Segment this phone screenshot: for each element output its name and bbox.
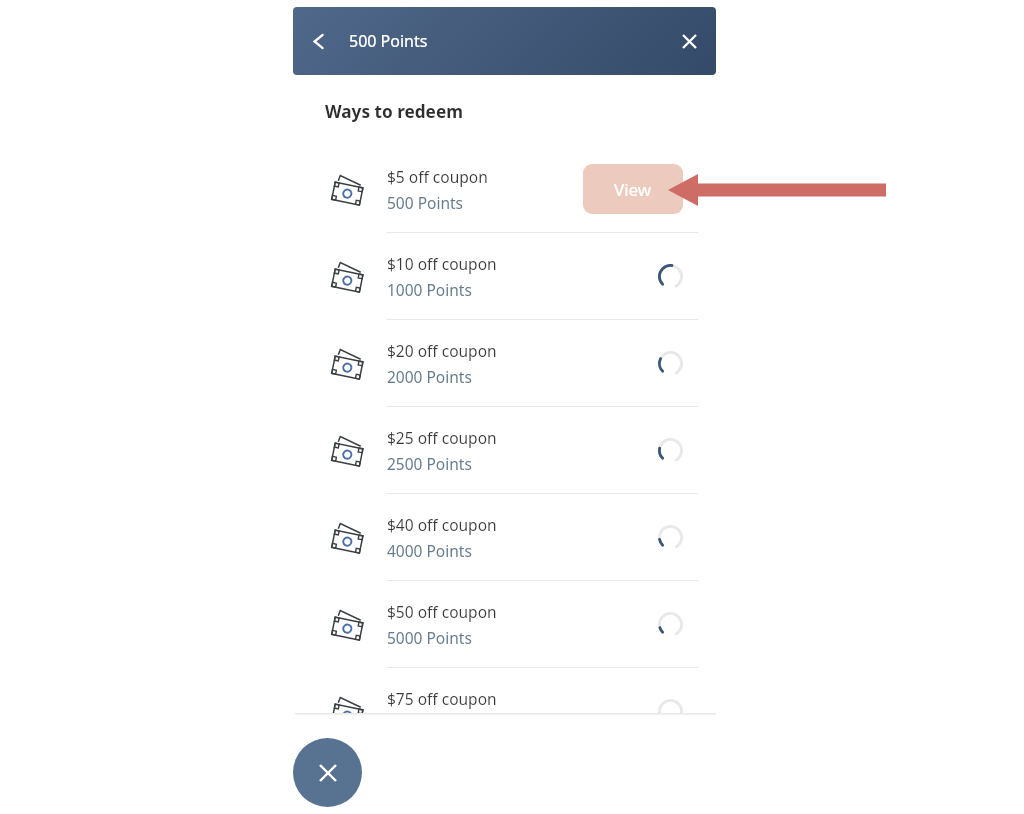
staticText: 2500 Points — [387, 453, 472, 474]
staticText: 4000 Points — [387, 540, 472, 561]
staticText: $50 off coupon — [387, 601, 497, 622]
staticText: $75 off coupon — [387, 688, 497, 709]
staticText: Ways to redeem — [325, 100, 463, 123]
button[interactable]: Close — [293, 738, 362, 807]
staticText: $20 off coupon — [387, 340, 497, 361]
staticText: 500 Points — [349, 30, 428, 52]
staticText: 5000 Points — [387, 627, 472, 648]
button[interactable]: View — [583, 164, 683, 214]
button[interactable]: $5 off coupon — [293, 146, 716, 232]
staticText: 500 Points — [387, 192, 463, 213]
staticText: 2000 Points — [387, 366, 472, 387]
button[interactable]: $40 off coupon — [293, 494, 716, 580]
staticText: $25 off coupon — [387, 427, 497, 448]
staticText: 1000 Points — [387, 279, 472, 300]
staticText: $5 off coupon — [387, 166, 488, 187]
button[interactable]: $50 off coupon — [293, 581, 716, 667]
staticText: $10 off coupon — [387, 253, 497, 274]
button[interactable]: Back — [296, 19, 340, 63]
button[interactable]: $25 off coupon — [293, 407, 716, 493]
button[interactable]: $75 off coupon — [293, 668, 716, 713]
staticText: View — [614, 178, 652, 201]
staticText: $40 off coupon — [387, 514, 497, 535]
button[interactable]: Close — [667, 19, 711, 63]
button[interactable]: $20 off coupon — [293, 320, 716, 406]
button[interactable]: $10 off coupon — [293, 233, 716, 319]
